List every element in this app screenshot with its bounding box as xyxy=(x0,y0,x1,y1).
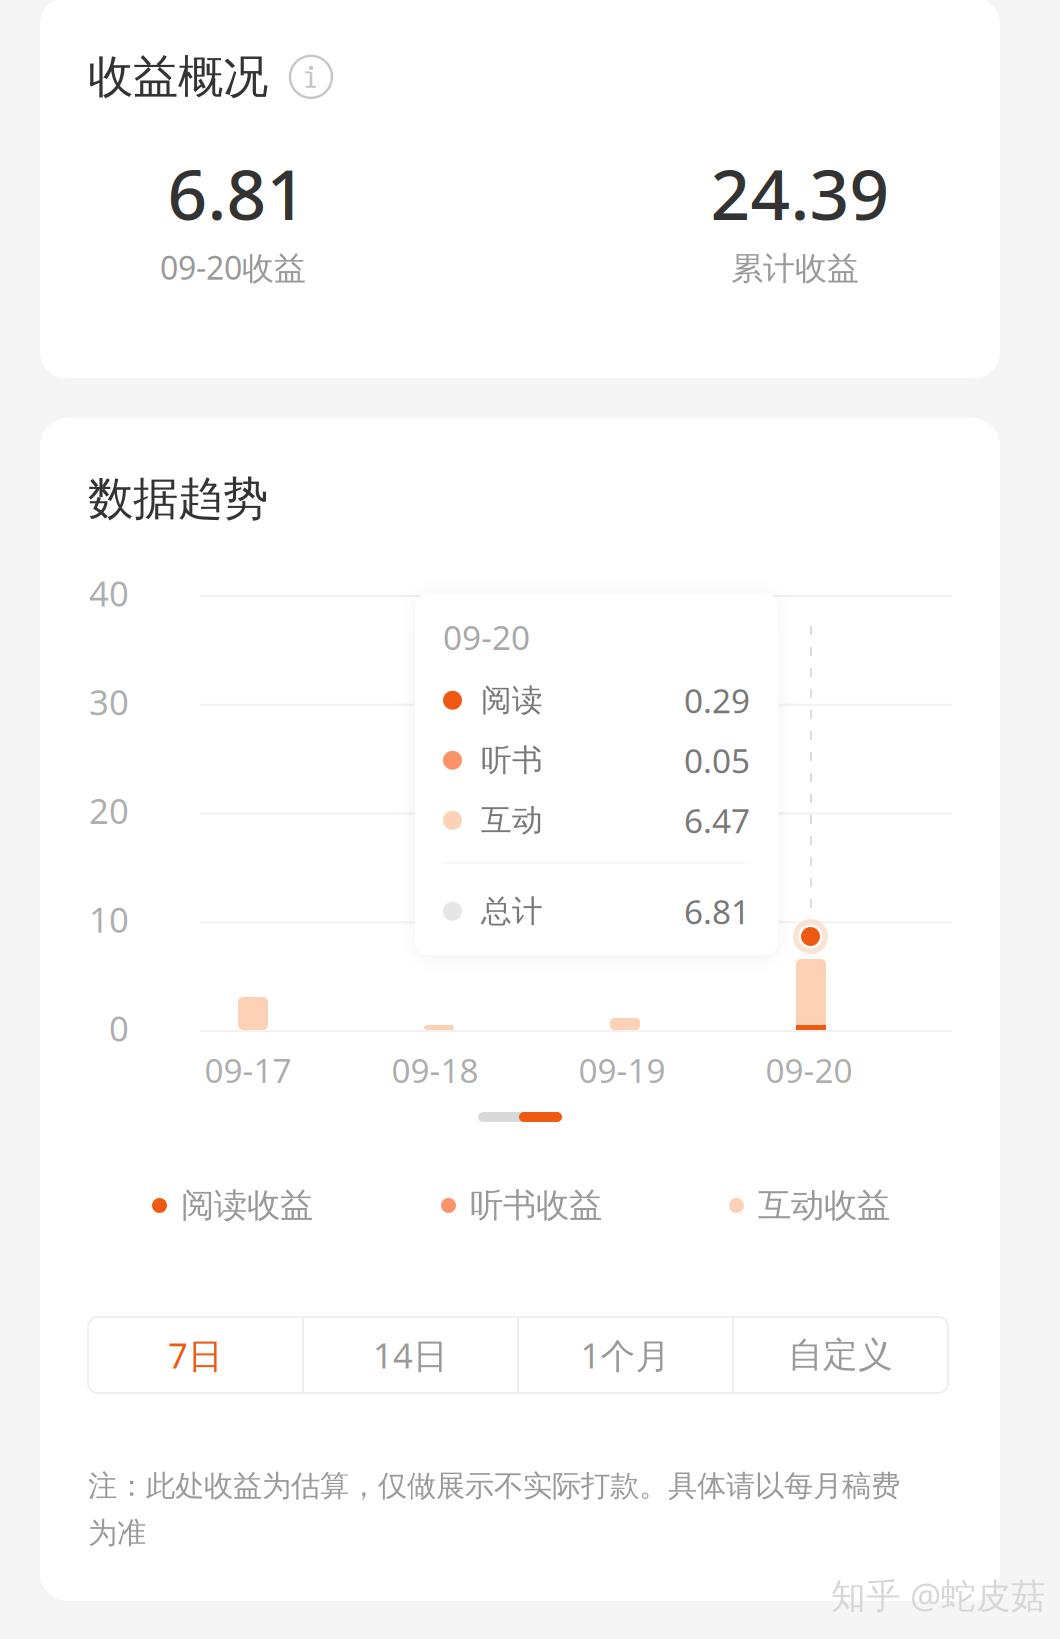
staticText: 自定义 xyxy=(788,1334,893,1376)
staticText: 阅读 xyxy=(481,681,543,719)
staticText: 收益概况 xyxy=(88,49,268,105)
staticText: 累计收益 xyxy=(731,249,859,288)
staticText: 20 xyxy=(89,787,129,833)
staticText: 1个月 xyxy=(580,1332,670,1378)
staticText: 听书收益 xyxy=(470,1185,602,1226)
staticText: 为准 xyxy=(88,1515,146,1551)
staticText: 09-18 xyxy=(391,1048,478,1092)
staticText: 09-20 xyxy=(765,1048,852,1092)
staticText: 30 xyxy=(89,679,129,725)
staticText: 总计 xyxy=(481,892,543,930)
staticText: 0 xyxy=(109,1005,129,1051)
staticText: 0.05 xyxy=(684,738,750,782)
staticText: 听书 xyxy=(481,741,543,779)
staticText: 09-19 xyxy=(578,1048,665,1092)
staticText: 阅读收益 xyxy=(181,1185,313,1226)
staticText: 注：此处收益为估算，仅做展示不实际打款。具体请以每月稿费 xyxy=(88,1468,900,1504)
staticText: 0.29 xyxy=(684,678,750,722)
staticText: 互动收益 xyxy=(758,1185,890,1226)
staticText: 互动 xyxy=(481,801,543,839)
staticText: 数据趋势 xyxy=(88,471,268,527)
staticText: 14日 xyxy=(373,1332,448,1378)
staticText: 40 xyxy=(89,570,129,616)
button[interactable]: 互动收益 xyxy=(729,1185,890,1226)
button[interactable]: 7日 xyxy=(89,1317,302,1393)
staticText: 6.81 xyxy=(167,147,306,239)
button[interactable]: 14日 xyxy=(304,1317,517,1393)
staticText: 6.81 xyxy=(684,889,750,933)
button[interactable]: 收益概况 说明 xyxy=(88,49,332,105)
staticText: 10 xyxy=(89,896,129,942)
staticText: 6.47 xyxy=(684,798,750,842)
staticText: 知乎 @蛇皮菇 xyxy=(831,1572,1046,1618)
staticText: 09-20收益 xyxy=(160,246,306,288)
staticText: 09-17 xyxy=(204,1048,291,1092)
staticText: 7日 xyxy=(168,1332,223,1378)
button[interactable]: 1个月 xyxy=(519,1317,732,1393)
staticText: 09-20 xyxy=(443,615,530,659)
staticText: 24.39 xyxy=(710,147,889,239)
button[interactable]: 阅读收益 xyxy=(152,1185,313,1226)
button[interactable]: 自定义 xyxy=(734,1317,947,1393)
button[interactable]: 听书收益 xyxy=(441,1185,602,1226)
